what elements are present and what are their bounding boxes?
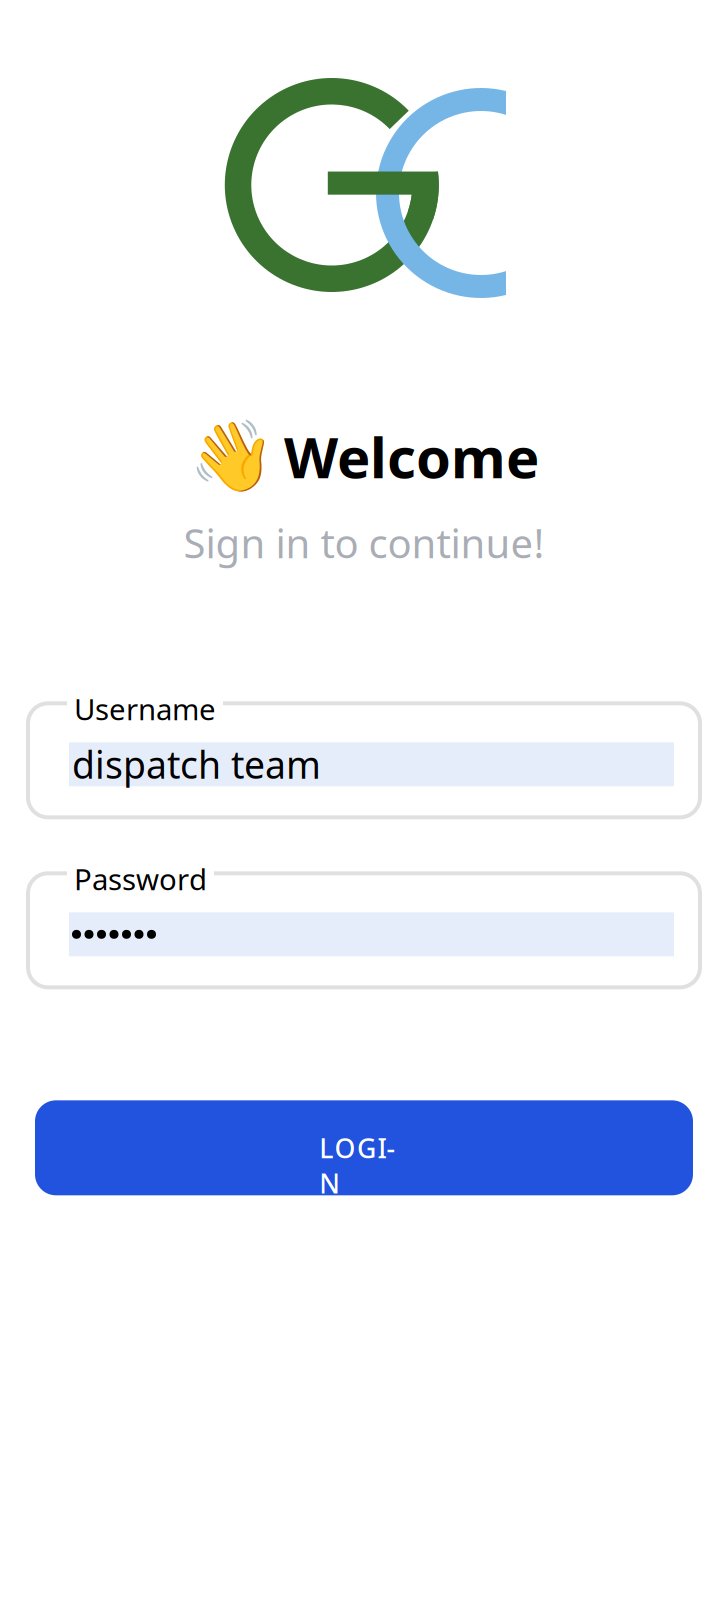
staticText: 👋 — [189, 417, 275, 496]
staticText: Welcome — [284, 419, 539, 494]
button[interactable]: LOGIN — [35, 1100, 693, 1195]
staticText: dispatch team — [72, 739, 321, 789]
staticText: Username — [74, 689, 216, 728]
staticText: Sign in to continue! — [183, 516, 544, 569]
staticText: LOGIN — [319, 1130, 409, 1165]
staticText: Password — [74, 859, 207, 898]
